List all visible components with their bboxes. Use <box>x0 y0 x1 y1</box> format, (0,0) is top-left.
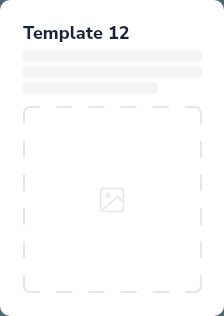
staticText: Template 12 <box>23 21 130 46</box>
button[interactable]: Add image <box>23 106 202 293</box>
